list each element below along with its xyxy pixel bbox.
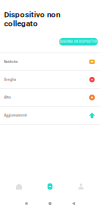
button[interactable]: Home xyxy=(3,182,34,191)
button[interactable]: Dispositivo xyxy=(34,182,65,191)
button[interactable]: Altro xyxy=(0,89,100,107)
button[interactable]: Home xyxy=(38,199,62,208)
staticText: Notifiche xyxy=(4,60,18,64)
staticText: collegato xyxy=(4,19,38,28)
staticText: Aggiornamenti xyxy=(4,113,27,117)
staticText: Dispositivo non xyxy=(4,10,60,19)
button[interactable]: Back xyxy=(62,199,85,208)
button[interactable]: Profilo xyxy=(65,182,96,191)
staticText: AGGIUNGI UN DISPOSITIVO xyxy=(59,40,98,43)
button[interactable]: Sveglia xyxy=(0,71,100,89)
button[interactable]: AGGIUNGI UN DISPOSITIVO xyxy=(59,38,98,45)
button[interactable]: Notifiche xyxy=(0,53,100,71)
staticText: Altro xyxy=(4,95,11,99)
button[interactable]: Aggiornamenti xyxy=(0,107,100,125)
staticText: Sveglia xyxy=(4,78,16,82)
button[interactable]: Recents xyxy=(15,199,38,208)
